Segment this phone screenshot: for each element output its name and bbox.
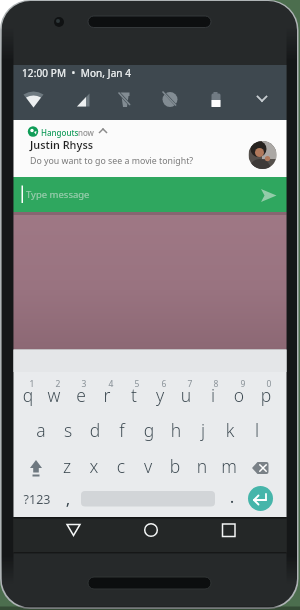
staticText: m [217,454,241,482]
staticText: 8 [204,378,228,392]
staticText: s [56,418,80,446]
button[interactable] [247,485,274,512]
button[interactable] [248,88,276,110]
staticText: 0 [257,378,281,392]
staticText: Do you want to go see a movie tonight? [30,155,230,169]
staticText: 4 [99,378,123,392]
staticText: r [95,383,119,411]
button[interactable] [22,455,47,480]
button[interactable] [250,182,282,208]
staticText: b [163,454,187,482]
staticText: 12:00 PM • Mon, Jan 4 [22,66,172,82]
staticText: 2 [46,378,70,392]
staticText: 3 [72,378,96,392]
staticText: t [122,383,146,411]
button[interactable] [14,177,249,212]
button[interactable] [134,518,162,546]
staticText: e [69,383,93,411]
button[interactable] [81,489,215,508]
staticText: , [60,487,76,514]
staticText: 6 [152,378,176,392]
staticText: c [109,454,133,482]
staticText: . [224,485,240,512]
staticText: o [227,383,251,411]
staticText: v [136,454,160,482]
button[interactable] [59,518,87,546]
staticText: Justin Rhyss [30,137,150,154]
staticText: z [55,454,79,482]
staticText: y [148,383,172,411]
staticText: w [42,383,66,411]
staticText: l [245,418,269,446]
staticText: 1 [20,378,44,392]
button[interactable] [209,518,237,546]
staticText: ?123 [17,491,57,511]
staticText: q [16,383,40,411]
staticText: i [201,383,225,411]
staticText: d [83,418,107,446]
staticText: 5 [125,378,149,392]
staticText: g [137,418,161,446]
staticText: p [254,383,278,411]
staticText: k [218,418,242,446]
staticText: x [82,454,106,482]
button[interactable] [14,120,287,177]
staticText: f [110,418,134,446]
staticText: j [191,418,215,446]
staticText: a [29,418,53,446]
button[interactable] [249,455,274,480]
staticText: Hangouts [41,127,101,140]
staticText: u [174,383,198,411]
staticText: 7 [178,378,202,392]
staticText: Type message [26,188,146,203]
staticText: 9 [231,378,255,392]
staticText: n [190,454,214,482]
staticText: h [164,418,188,446]
staticText: now [78,127,118,140]
